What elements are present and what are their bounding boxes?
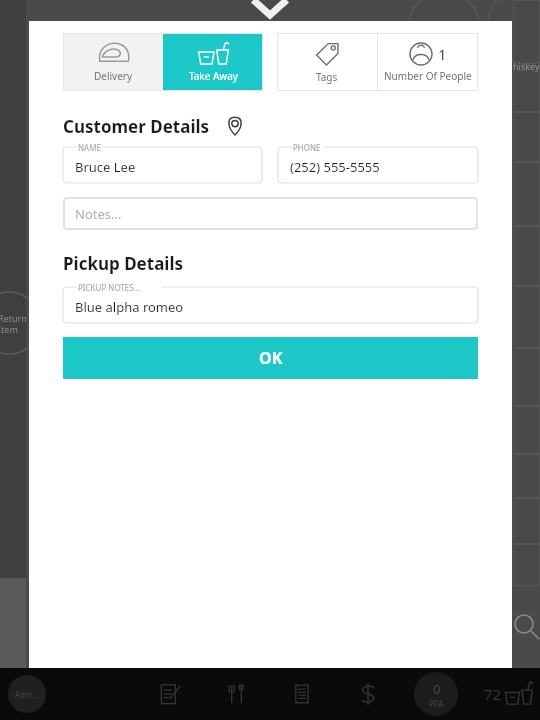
button[interactable]: Receipts (282, 674, 322, 714)
staticText: Take Away (189, 69, 238, 83)
button[interactable]: Dine In (216, 674, 256, 714)
staticText: Notes... (75, 205, 122, 223)
button[interactable]: Delivery (63, 33, 163, 91)
staticText: Pickup Details (63, 252, 184, 275)
staticText: NAME (78, 142, 101, 153)
staticText: Number Of People (384, 69, 472, 83)
staticText: PICKUP NOTES... (78, 282, 141, 293)
staticText: (252) 555-5555 (290, 158, 380, 176)
staticText: Bruce Lee (75, 158, 136, 176)
button[interactable]: Location (222, 113, 248, 139)
button[interactable]: Orders (150, 674, 190, 714)
staticText: hiskey (513, 60, 540, 72)
staticText: OK (259, 347, 283, 369)
button[interactable]: Take Away Orders (484, 682, 534, 706)
staticText: Adm… (15, 689, 39, 700)
button[interactable]: Cash (348, 674, 388, 714)
staticText: Customer Details (63, 115, 210, 138)
staticText: 72 (484, 684, 502, 704)
staticText: 1 (438, 44, 447, 64)
button[interactable]: Take Away (163, 33, 263, 91)
staticText: Return Item (0, 312, 27, 336)
button[interactable]: PPA (414, 672, 458, 716)
button[interactable]: 1 (378, 33, 478, 91)
button[interactable]: Tags (277, 33, 377, 91)
staticText: PHONE (293, 142, 321, 153)
button[interactable]: Notes... (63, 197, 478, 230)
staticText: Blue alpha romeo (75, 298, 184, 316)
staticText: PPA (429, 698, 444, 709)
button[interactable]: OK (63, 337, 478, 379)
button[interactable]: Adm… (8, 675, 46, 713)
staticText: Delivery (94, 69, 133, 83)
staticText: 0 (433, 680, 441, 698)
staticText: Tags (316, 70, 338, 84)
